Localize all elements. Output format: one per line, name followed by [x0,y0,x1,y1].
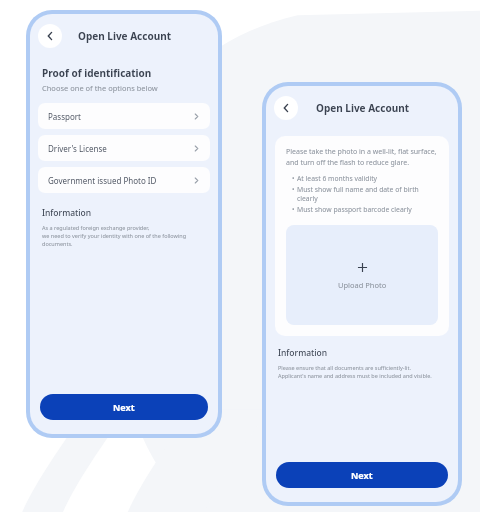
button[interactable]: Passport [38,103,210,129]
staticText: Open Live Account [316,101,409,115]
staticText: • [292,205,297,214]
staticText: Choose one of the options below [42,83,158,93]
staticText: • [292,185,297,194]
staticText: • [292,174,297,183]
staticText: Information [278,347,328,359]
button[interactable]: Back [274,96,298,120]
staticText: Next [351,469,373,481]
staticText: Next [113,401,135,413]
staticText: Passport [48,111,81,122]
staticText: Upload Photo [338,280,387,290]
button[interactable]: Government issued Photo ID [38,167,210,193]
button[interactable]: Upload Photo [286,225,438,325]
staticText: Must show full name and date of birth cl… [297,185,438,203]
button[interactable]: Driver's License [38,135,210,161]
staticText: Driver's License [48,143,107,154]
button[interactable]: Back [38,24,62,48]
button[interactable]: Next [40,394,208,420]
staticText: Please take the photo in a well-lit, fla… [286,147,437,167]
staticText: Proof of identification [42,66,152,80]
staticText: At least 6 months validity [297,174,378,183]
staticText: Information [42,207,92,219]
button[interactable]: Next [276,462,448,488]
staticText: Open Live Account [78,29,171,43]
staticText: As a regulated foreign exchange provider… [42,224,206,248]
staticText: Must show passport barcode clearly [297,205,412,214]
staticText: Government issued Photo ID [48,175,157,186]
staticText: Please ensure that all documents are suf… [278,364,432,380]
